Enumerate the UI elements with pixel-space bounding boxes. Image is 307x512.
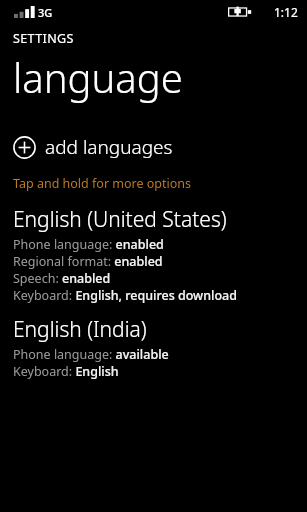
staticText: SETTINGS [13,30,74,47]
staticText: English (India) [13,315,147,344]
staticText: Speech: enabled [13,270,111,287]
staticText: Keyboard: English [13,363,119,380]
staticText: 1:12 [274,4,298,20]
staticText: Tap and hold for more options [13,175,192,192]
staticText: 3G [38,5,53,20]
button[interactable]: English (India) [0,313,307,382]
staticText: Regional format: enabled [13,253,163,270]
staticText: Keyboard: English, requires download [13,287,237,304]
button[interactable]: add languages [0,130,307,164]
button[interactable]: English (United States) [0,203,307,306]
staticText: language [13,50,183,104]
staticText: Phone language: available [13,346,169,363]
staticText: Phone language: enabled [13,236,164,253]
staticText: add languages [45,134,173,160]
staticText: English (United States) [13,205,227,234]
